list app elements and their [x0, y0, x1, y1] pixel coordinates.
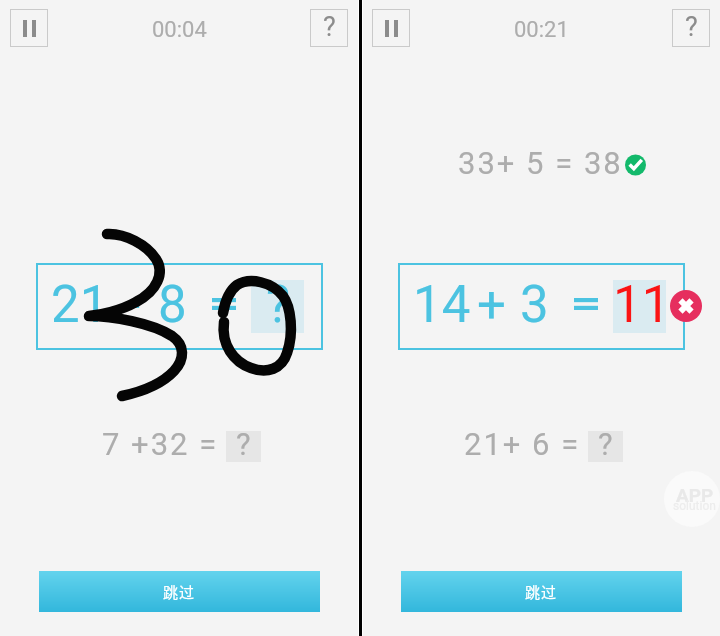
- button[interactable]: 14 + 3 = 11: [398, 263, 685, 350]
- staticText: 14: [413, 275, 471, 335]
- staticText: 跳过: [525, 581, 558, 603]
- button[interactable]: Pause: [10, 9, 48, 47]
- staticText: -: [126, 275, 141, 335]
- button[interactable]: Pause: [372, 9, 410, 47]
- staticText: solution: [673, 499, 720, 513]
- button[interactable]: Next question 7 +32 = ?: [226, 431, 261, 462]
- button[interactable]: Next question 21+ 6 = ?: [588, 431, 623, 462]
- staticText: 33+ 5 = 38: [458, 145, 623, 181]
- staticText: ?: [598, 426, 615, 462]
- button[interactable]: 21 - 8 = ?: [36, 263, 323, 350]
- staticText: 11: [613, 275, 671, 335]
- staticText: 7 +32 =: [102, 426, 219, 462]
- staticText: ?: [236, 426, 253, 462]
- staticText: ?: [266, 275, 291, 335]
- staticText: +: [477, 275, 506, 335]
- button[interactable]: Help: [672, 9, 710, 47]
- staticText: 21: [51, 275, 109, 335]
- button[interactable]: 跳过: [39, 571, 320, 612]
- button[interactable]: Help: [310, 9, 348, 47]
- staticText: ?: [685, 11, 698, 43]
- staticText: APP: [676, 484, 720, 506]
- staticText: 8: [158, 275, 187, 335]
- staticText: 00:04: [152, 17, 207, 43]
- staticText: 跳过: [163, 581, 196, 603]
- staticText: ?: [323, 11, 336, 43]
- staticText: 3: [520, 275, 549, 335]
- staticText: 00:21: [514, 17, 569, 43]
- button[interactable]: Incorrect: [670, 290, 702, 322]
- staticText: 21+ 6 =: [464, 426, 581, 462]
- button[interactable]: 跳过: [401, 571, 682, 612]
